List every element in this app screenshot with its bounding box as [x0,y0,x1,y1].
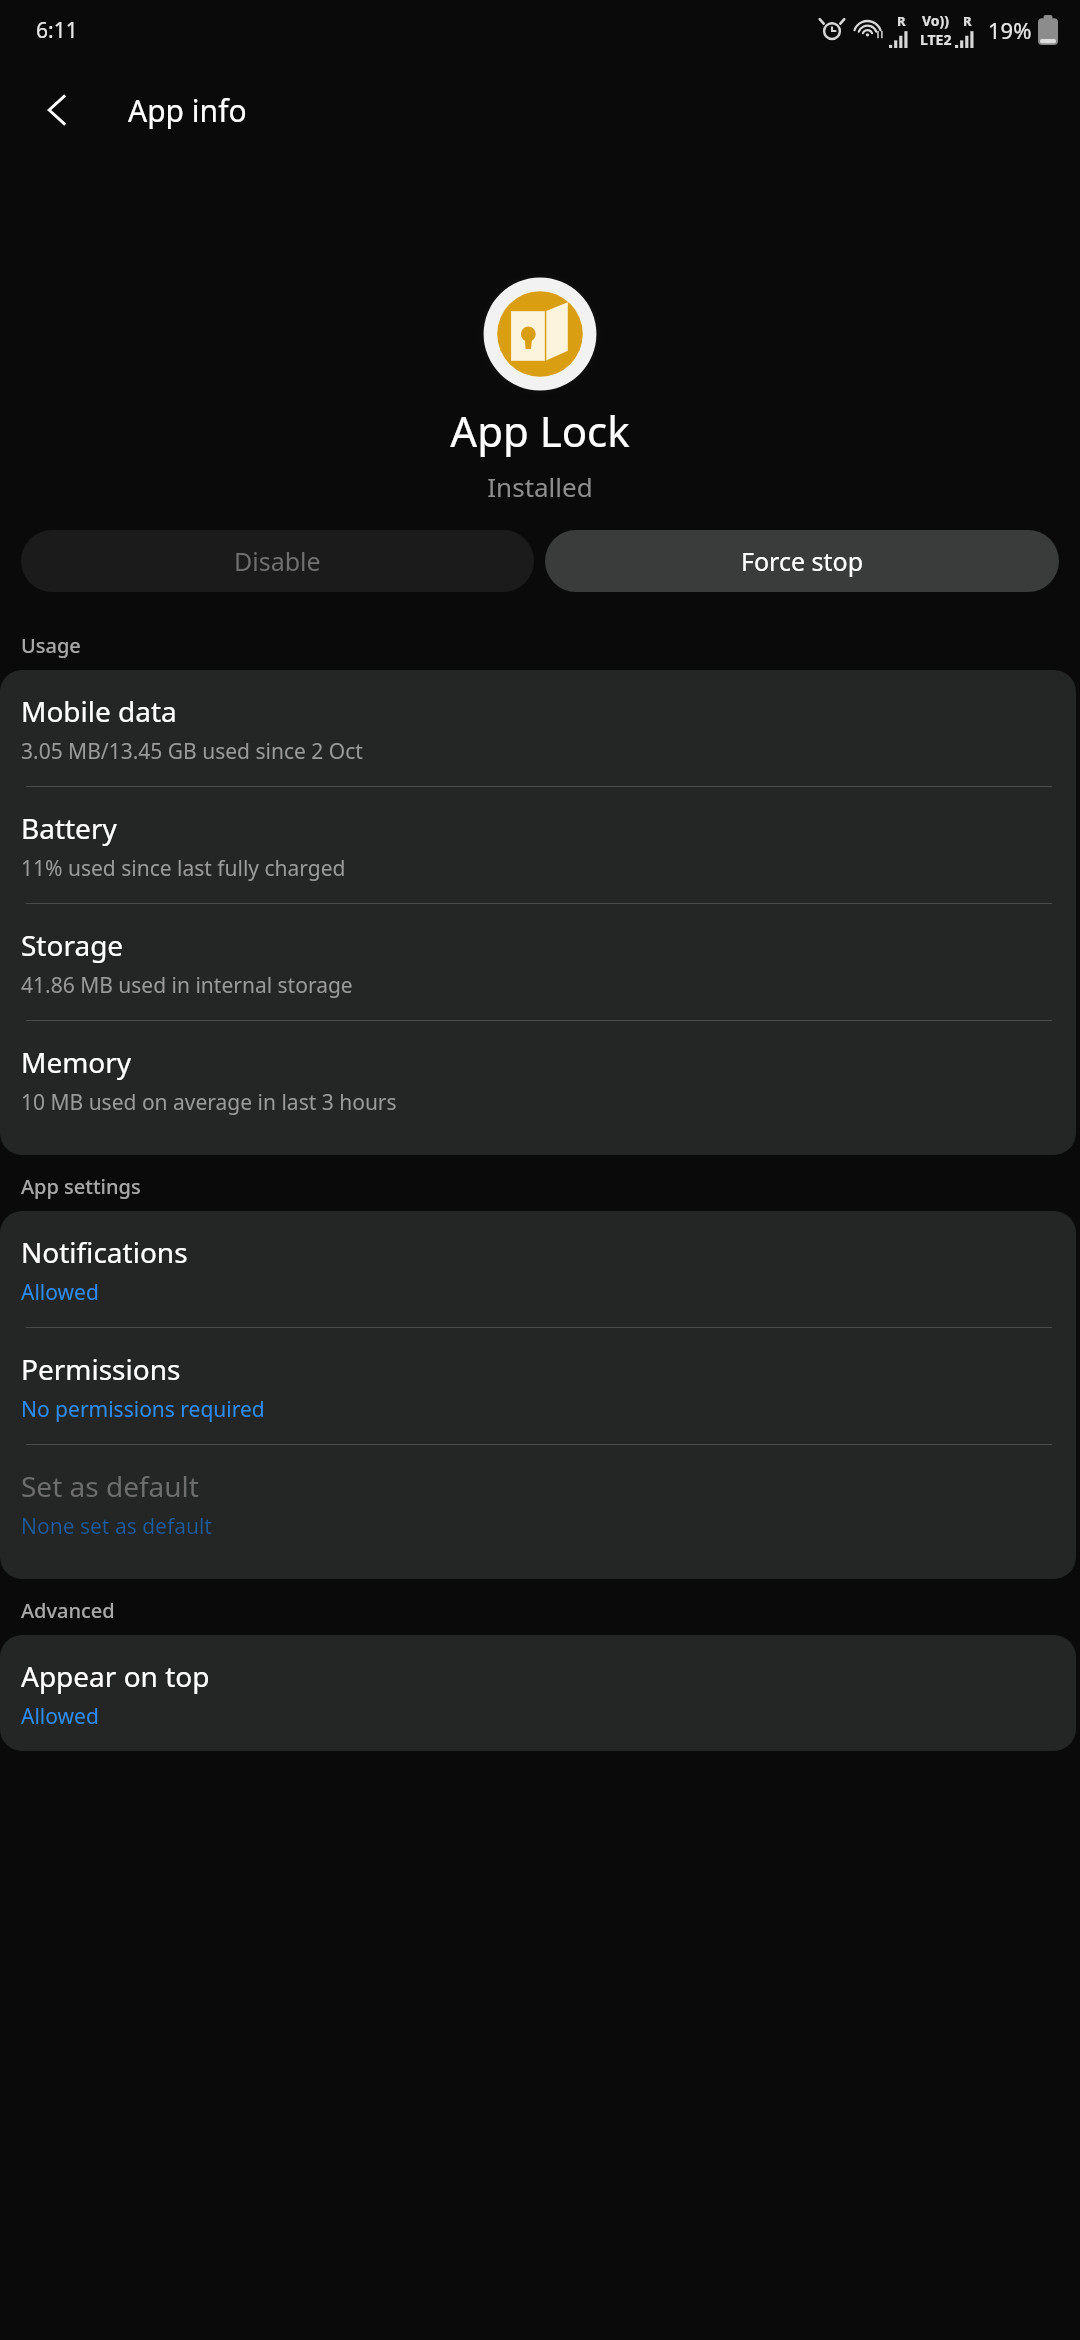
button[interactable]: Mobile data [0,670,1076,786]
button[interactable]: Back [22,74,94,146]
staticText: 11% used since last fully charged [21,854,346,883]
button[interactable]: Permissions [0,1328,1076,1444]
staticText: R [963,12,972,30]
button[interactable]: Force stop [545,530,1059,592]
staticText: Advanced [21,1597,115,1624]
staticText: Set as default [21,1467,199,1505]
staticText: Force stop [741,544,864,578]
button[interactable]: Battery [0,787,1076,903]
staticText: R [897,12,906,30]
staticText: Memory [21,1043,132,1081]
button[interactable]: Storage [0,904,1076,1020]
staticText: None set as default [21,1512,212,1541]
staticText: Storage [21,926,124,964]
staticText: App Lock [450,402,630,459]
staticText: Appear on top [21,1657,210,1695]
staticText: No permissions required [21,1395,265,1424]
button[interactable]: Set as default [0,1445,1076,1561]
staticText: Allowed [21,1702,99,1731]
button[interactable]: Appear on top [0,1635,1076,1751]
staticText: 41.86 MB used in internal storage [21,971,353,1000]
staticText: Vo)) [922,11,950,30]
staticText: Mobile data [21,692,177,730]
staticText: App info [128,90,247,131]
staticText: App settings [21,1173,141,1200]
staticText: Permissions [21,1350,181,1388]
button[interactable]: Notifications [0,1211,1076,1327]
staticText: 3.05 MB/13.45 GB used since 2 Oct [21,737,363,766]
staticText: Installed [487,469,593,504]
staticText: LTE2 [920,30,952,49]
staticText: Battery [21,809,117,847]
staticText: Usage [21,632,81,659]
staticText: 19% [988,15,1032,45]
staticText: 6:11 [36,16,78,45]
button[interactable]: Memory [0,1021,1076,1137]
staticText: 10 MB used on average in last 3 hours [21,1088,397,1117]
button[interactable]: Disable [21,530,534,592]
staticText: Allowed [21,1278,99,1307]
staticText: Disable [234,544,321,578]
staticText: Notifications [21,1233,188,1271]
